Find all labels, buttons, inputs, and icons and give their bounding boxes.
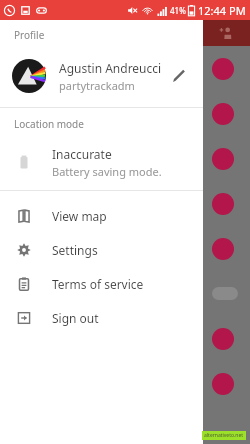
button[interactable]: Edit profile <box>167 64 191 88</box>
staticText: Profile <box>14 28 45 42</box>
staticText: Battery saving mode. <box>52 164 162 179</box>
staticText: 12:44 PM <box>198 3 246 18</box>
staticText: alternativeto.net <box>204 432 244 439</box>
button[interactable]: Sign out <box>0 301 203 335</box>
staticText: View map <box>52 208 107 224</box>
staticText: Agustin Andreucci <box>59 60 162 76</box>
button[interactable]: Terms of service <box>0 267 203 301</box>
staticText: Settings <box>52 242 98 258</box>
button[interactable]: View map <box>0 199 203 233</box>
button[interactable]: Add person <box>216 23 236 43</box>
staticText: partytrackadm <box>59 78 135 93</box>
button[interactable]: Inaccurate <box>0 140 203 184</box>
staticText: 41% <box>170 5 186 16</box>
staticText: Sign out <box>52 310 99 326</box>
staticText: Terms of service <box>52 276 144 292</box>
button[interactable]: Agustin Andreucci <box>0 50 203 102</box>
button[interactable]: Settings <box>0 233 203 267</box>
staticText: Location mode <box>14 117 84 131</box>
staticText: Inaccurate <box>52 146 112 162</box>
